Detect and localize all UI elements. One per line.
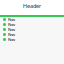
staticText: Row	[8, 27, 15, 32]
staticText: Row	[8, 22, 15, 27]
staticText: Header	[23, 2, 41, 10]
staticText: Row	[8, 37, 15, 42]
staticText: Row	[8, 17, 15, 22]
staticText: Row	[8, 32, 15, 37]
